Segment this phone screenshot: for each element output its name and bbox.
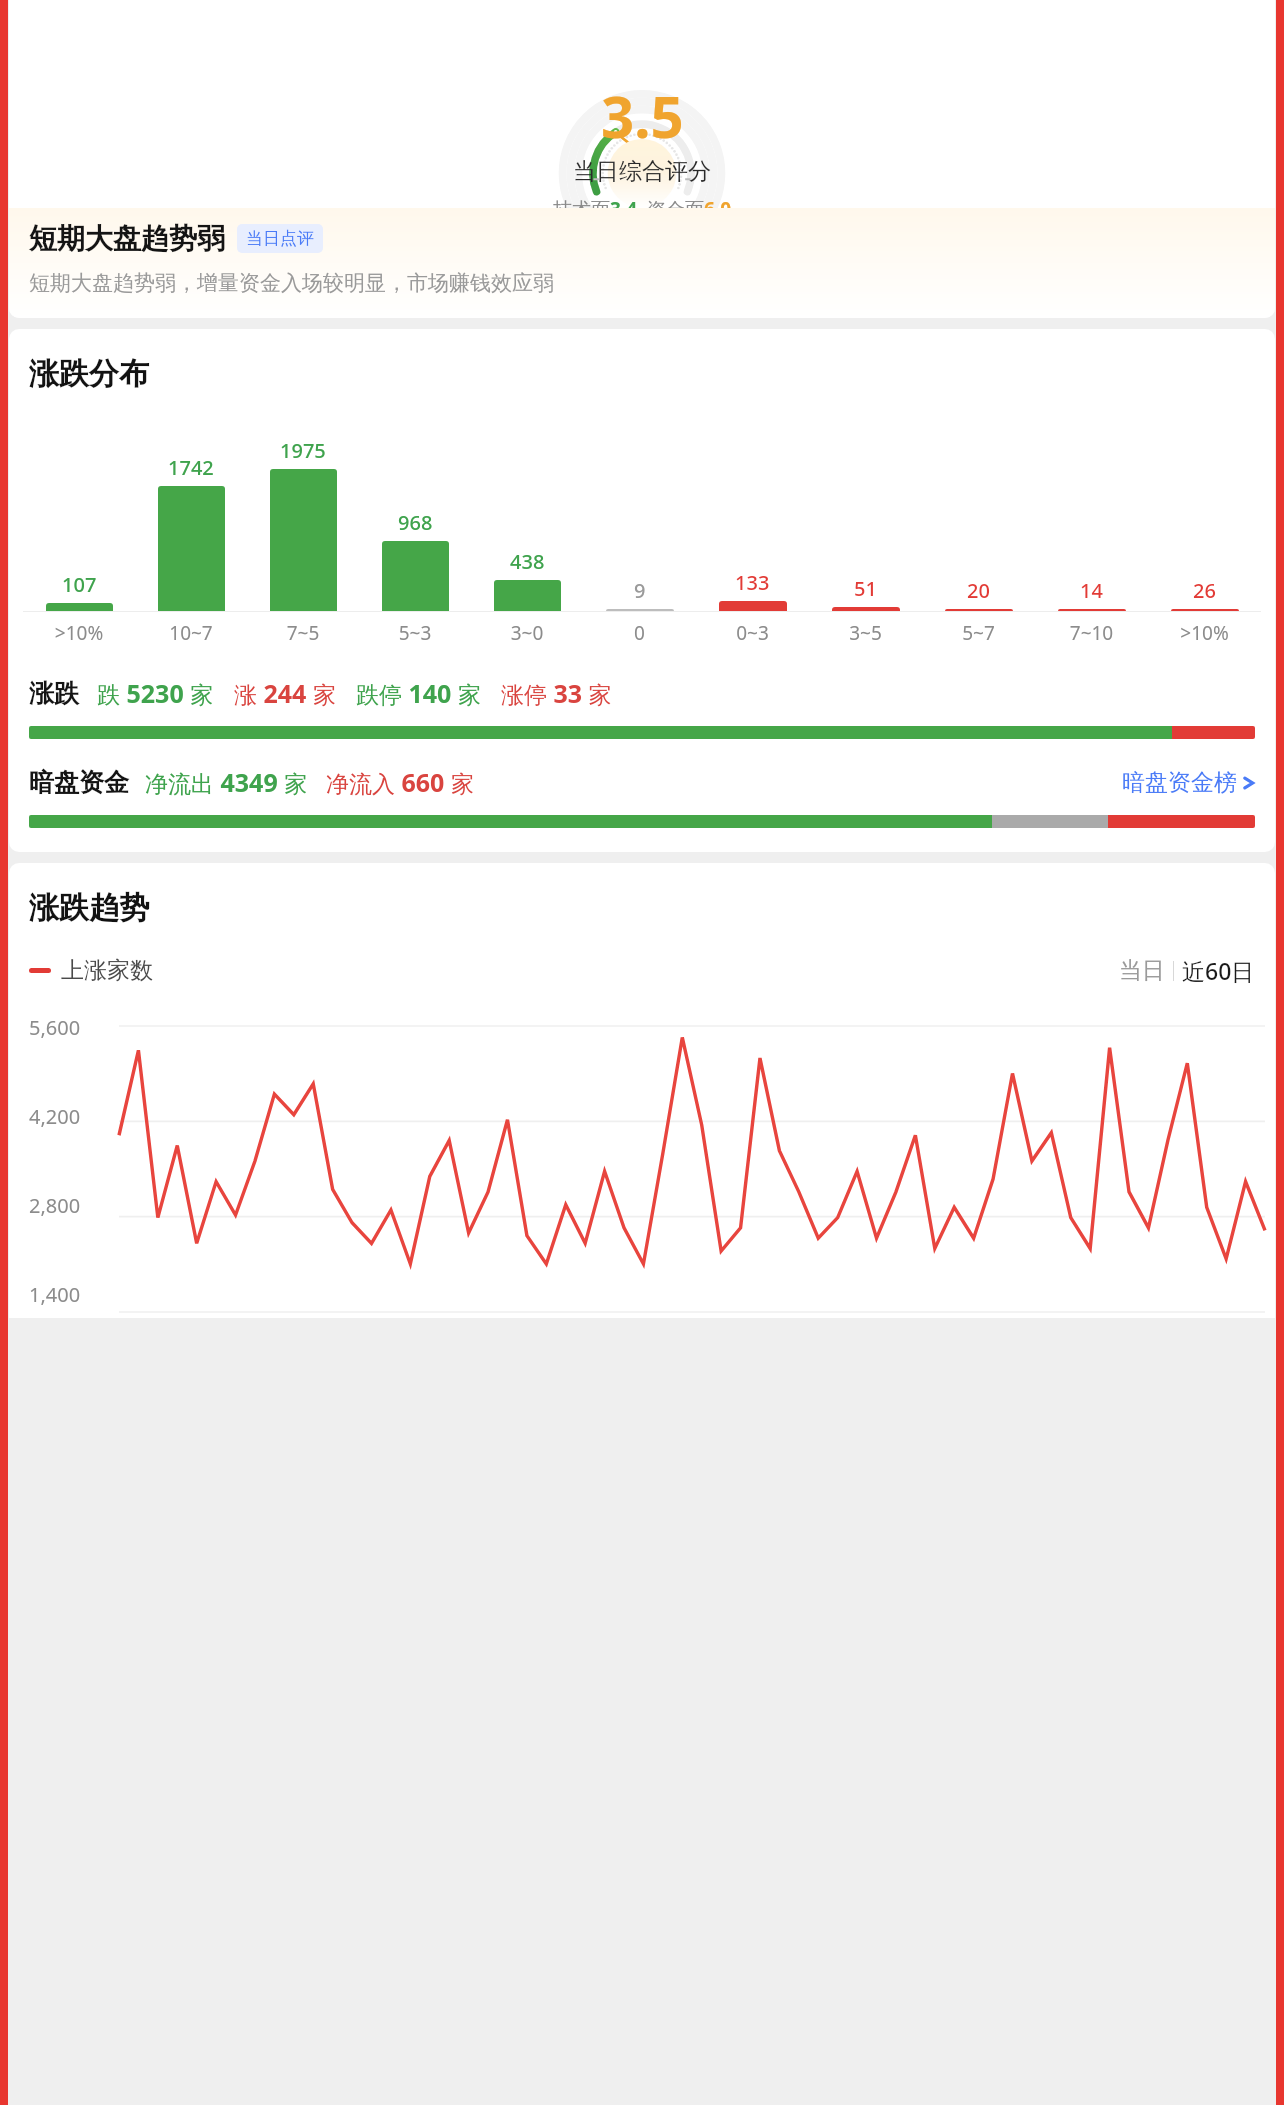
staticText: 3.5 <box>601 76 684 155</box>
staticText: 0 <box>583 620 696 646</box>
staticText: 当日综合评分 <box>573 157 711 186</box>
staticText: 当日 <box>1119 956 1165 985</box>
staticText: 涨跌分布 <box>29 355 149 393</box>
staticText: 跌停 140 家 <box>356 676 481 710</box>
staticText: 2,800 <box>29 1192 81 1219</box>
staticText: 上涨家数 <box>61 956 153 985</box>
staticText: >10% <box>23 620 135 646</box>
other: More <box>1243 773 1255 793</box>
button[interactable]: 暗盘资金 <box>9 765 1275 799</box>
staticText: 7~5 <box>247 620 359 646</box>
staticText: 3~5 <box>809 620 922 646</box>
staticText: 跌 5230 家 <box>97 676 214 710</box>
staticText: 0~3 <box>696 620 809 646</box>
staticText: 107 <box>62 571 97 598</box>
staticText: 1975 <box>280 437 326 464</box>
staticText: 净流出 4349 家 <box>145 765 308 799</box>
staticText: 近60日 <box>1182 955 1255 986</box>
staticText: 短期大盘趋势弱 <box>29 221 225 256</box>
staticText: 暗盘资金榜 <box>1122 768 1237 797</box>
staticText: 技术面3.4 资金面6.0 <box>553 196 732 222</box>
staticText: 暗盘资金 <box>29 767 129 798</box>
staticText: 涨停 33 家 <box>501 676 612 710</box>
button[interactable]: 当日点评 <box>237 224 323 253</box>
staticText: 968 <box>398 509 433 536</box>
button[interactable]: 涨跌 <box>9 676 1275 710</box>
staticText: 20 <box>967 577 990 604</box>
staticText: 14 <box>1080 577 1103 604</box>
staticText: 1742 <box>168 454 214 481</box>
staticText: 9 <box>634 577 646 604</box>
staticText: 涨跌趋势 <box>29 889 149 927</box>
staticText: 1,400 <box>29 1281 81 1308</box>
button[interactable]: 当日 <box>1119 956 1165 985</box>
staticText: 涨 244 家 <box>234 676 336 710</box>
staticText: 7~10 <box>1035 620 1148 646</box>
staticText: 133 <box>735 569 770 596</box>
staticText: 51 <box>854 575 877 602</box>
staticText: 净流入 660 家 <box>326 765 474 799</box>
staticText: 短期大盘趋势弱，增量资金入场较明显，市场赚钱效应弱 <box>29 270 554 296</box>
staticText: 当日点评 <box>246 228 314 249</box>
staticText: 10~7 <box>135 620 247 646</box>
button[interactable]: 近60日 <box>1182 955 1255 986</box>
staticText: 3~0 <box>471 620 583 646</box>
staticText: 26 <box>1193 577 1216 604</box>
staticText: 5~7 <box>922 620 1035 646</box>
button[interactable]: 暗盘资金榜 <box>1122 768 1255 797</box>
staticText: 4,200 <box>29 1103 81 1130</box>
staticText: >10% <box>1148 620 1261 646</box>
staticText: 5~3 <box>359 620 471 646</box>
staticText: 5,600 <box>29 1014 81 1041</box>
staticText: 438 <box>510 548 545 575</box>
staticText: 涨跌 <box>29 678 79 709</box>
